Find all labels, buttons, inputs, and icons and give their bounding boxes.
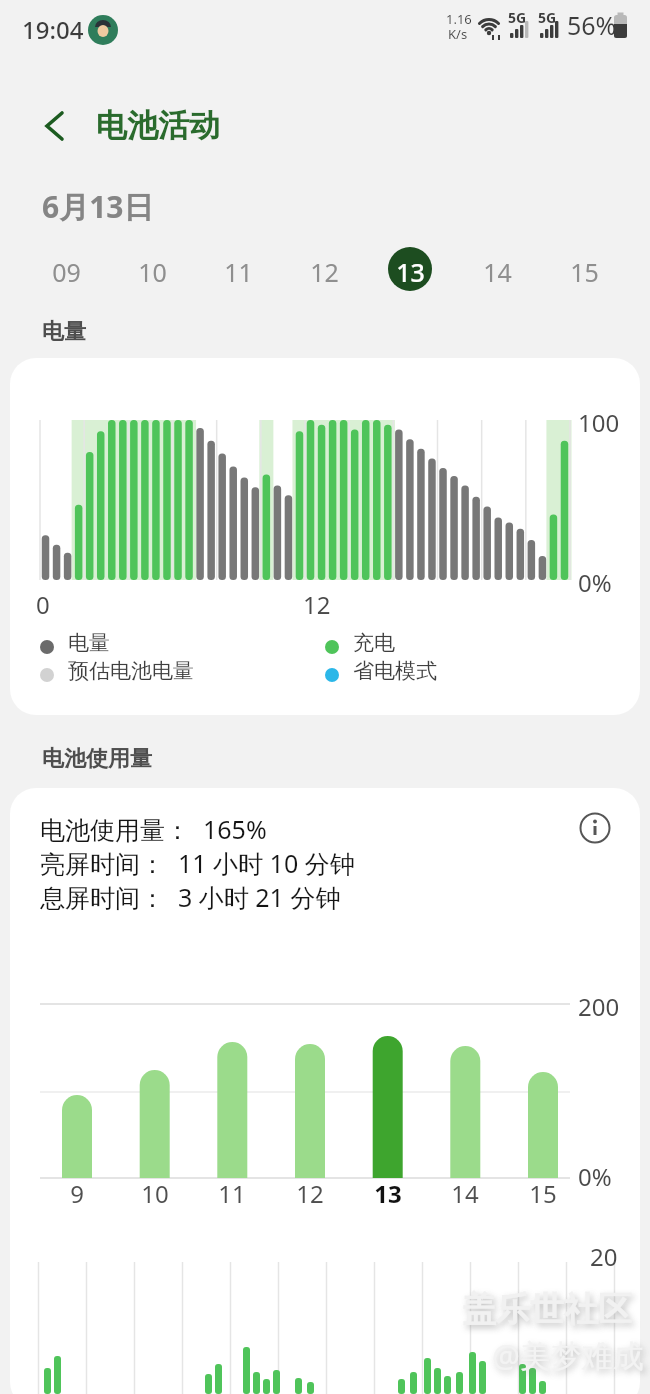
staticText: 13	[396, 255, 425, 289]
staticText: K/s	[448, 25, 468, 43]
staticText: 0%	[578, 566, 612, 599]
button[interactable]: 15	[0, 0, 120, 34]
staticText: 12	[303, 588, 331, 621]
staticText: 15	[529, 1177, 557, 1210]
staticText: 省电模式	[353, 658, 437, 684]
staticText: 14	[451, 1177, 479, 1210]
staticText: 0	[36, 588, 50, 621]
staticText: 电池活动	[96, 106, 220, 145]
button[interactable]: 14	[0, 0, 120, 34]
staticText: 56%	[567, 8, 617, 42]
button[interactable]	[577, 810, 613, 846]
staticText: 盖乐世社区	[462, 1288, 632, 1331]
button[interactable]: 09	[0, 0, 120, 34]
staticText: 电量	[68, 630, 110, 656]
staticText: 11	[218, 1177, 246, 1210]
staticText: 200	[578, 990, 620, 1023]
staticText: 100	[578, 406, 620, 439]
button[interactable]	[388, 247, 432, 291]
staticText: 亮屏时间： 11 小时 10 分钟	[40, 846, 355, 880]
staticText: 12	[296, 1177, 324, 1210]
staticText: 20	[590, 1240, 618, 1273]
staticText: 09	[52, 255, 81, 289]
button[interactable]: 10	[0, 0, 120, 34]
staticText: 13	[374, 1177, 402, 1210]
staticText: 电池使用量： 165%	[40, 812, 267, 846]
staticText: 10	[138, 255, 167, 289]
staticText: 9	[70, 1177, 84, 1210]
staticText: 电量	[42, 318, 86, 346]
staticText: 5G	[508, 8, 527, 27]
staticText: 6月13日	[42, 186, 154, 227]
staticText: 12	[310, 255, 339, 289]
staticText: 0%	[578, 1160, 612, 1193]
staticText: 电池使用量	[42, 745, 152, 773]
staticText: @美梦难成	[492, 1334, 644, 1376]
button[interactable]: 11	[0, 0, 120, 34]
staticText: 息屏时间： 3 小时 21 分钟	[40, 880, 341, 914]
button[interactable]: 12	[0, 0, 120, 34]
staticText: 14	[483, 255, 512, 289]
staticText: 5G	[538, 8, 557, 27]
staticText: 15	[570, 255, 599, 289]
staticText: 11	[224, 255, 253, 289]
staticText: 19:04	[22, 13, 84, 46]
staticText: 10	[141, 1177, 169, 1210]
button[interactable]	[30, 100, 82, 152]
staticText: 预估电池电量	[68, 658, 194, 684]
staticText: 1.16	[446, 10, 472, 28]
staticText: 充电	[353, 630, 395, 656]
